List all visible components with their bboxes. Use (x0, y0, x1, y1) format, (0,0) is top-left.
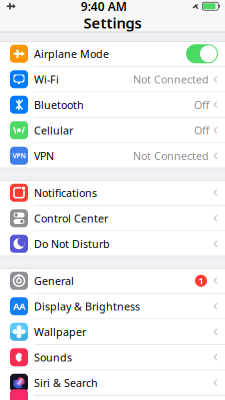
button[interactable]: Do Not Disturb (0, 231, 225, 256)
staticText: Sounds (34, 350, 72, 364)
staticText: Bluetooth (34, 98, 84, 112)
staticText: Cellular (34, 123, 73, 137)
button[interactable]: Wi-Fi (0, 67, 225, 92)
staticText: VPN (12, 151, 25, 160)
staticText: Do Not Disturb (34, 237, 110, 251)
staticText: AA (13, 300, 25, 312)
button[interactable]: Cellular (0, 118, 225, 143)
staticText: Settings (83, 13, 141, 32)
button[interactable]: General (0, 268, 225, 294)
staticText: Control Center (34, 211, 108, 225)
staticText: Not Connected (133, 149, 209, 163)
staticText: Not Connected (133, 72, 209, 86)
button[interactable]: Airplane Mode (0, 41, 225, 67)
button[interactable]: Notifications (0, 180, 225, 206)
staticText: Notifications (34, 186, 97, 200)
button[interactable]: Wallpaper (0, 319, 225, 345)
staticText: 1 (198, 275, 203, 287)
staticText: Off (194, 98, 209, 112)
staticText: Siri & Search (34, 376, 98, 390)
staticText: Airplane Mode (34, 47, 109, 61)
button[interactable]: Bluetooth (0, 92, 225, 118)
staticText: Display & Brightness (34, 299, 140, 313)
button[interactable]: VPN (0, 143, 225, 168)
staticText: General (34, 274, 74, 288)
staticText: VPN (34, 149, 54, 163)
button[interactable]: Control Center (0, 206, 225, 231)
button[interactable]: Siri & Search (0, 370, 225, 396)
staticText: 9:40 AM (81, 0, 127, 14)
staticText: Wallpaper (34, 325, 86, 339)
button[interactable]: Sounds (0, 345, 225, 370)
staticText: Off (194, 123, 209, 137)
staticText: Wi-Fi (34, 72, 59, 86)
button[interactable]: AA (0, 294, 225, 319)
